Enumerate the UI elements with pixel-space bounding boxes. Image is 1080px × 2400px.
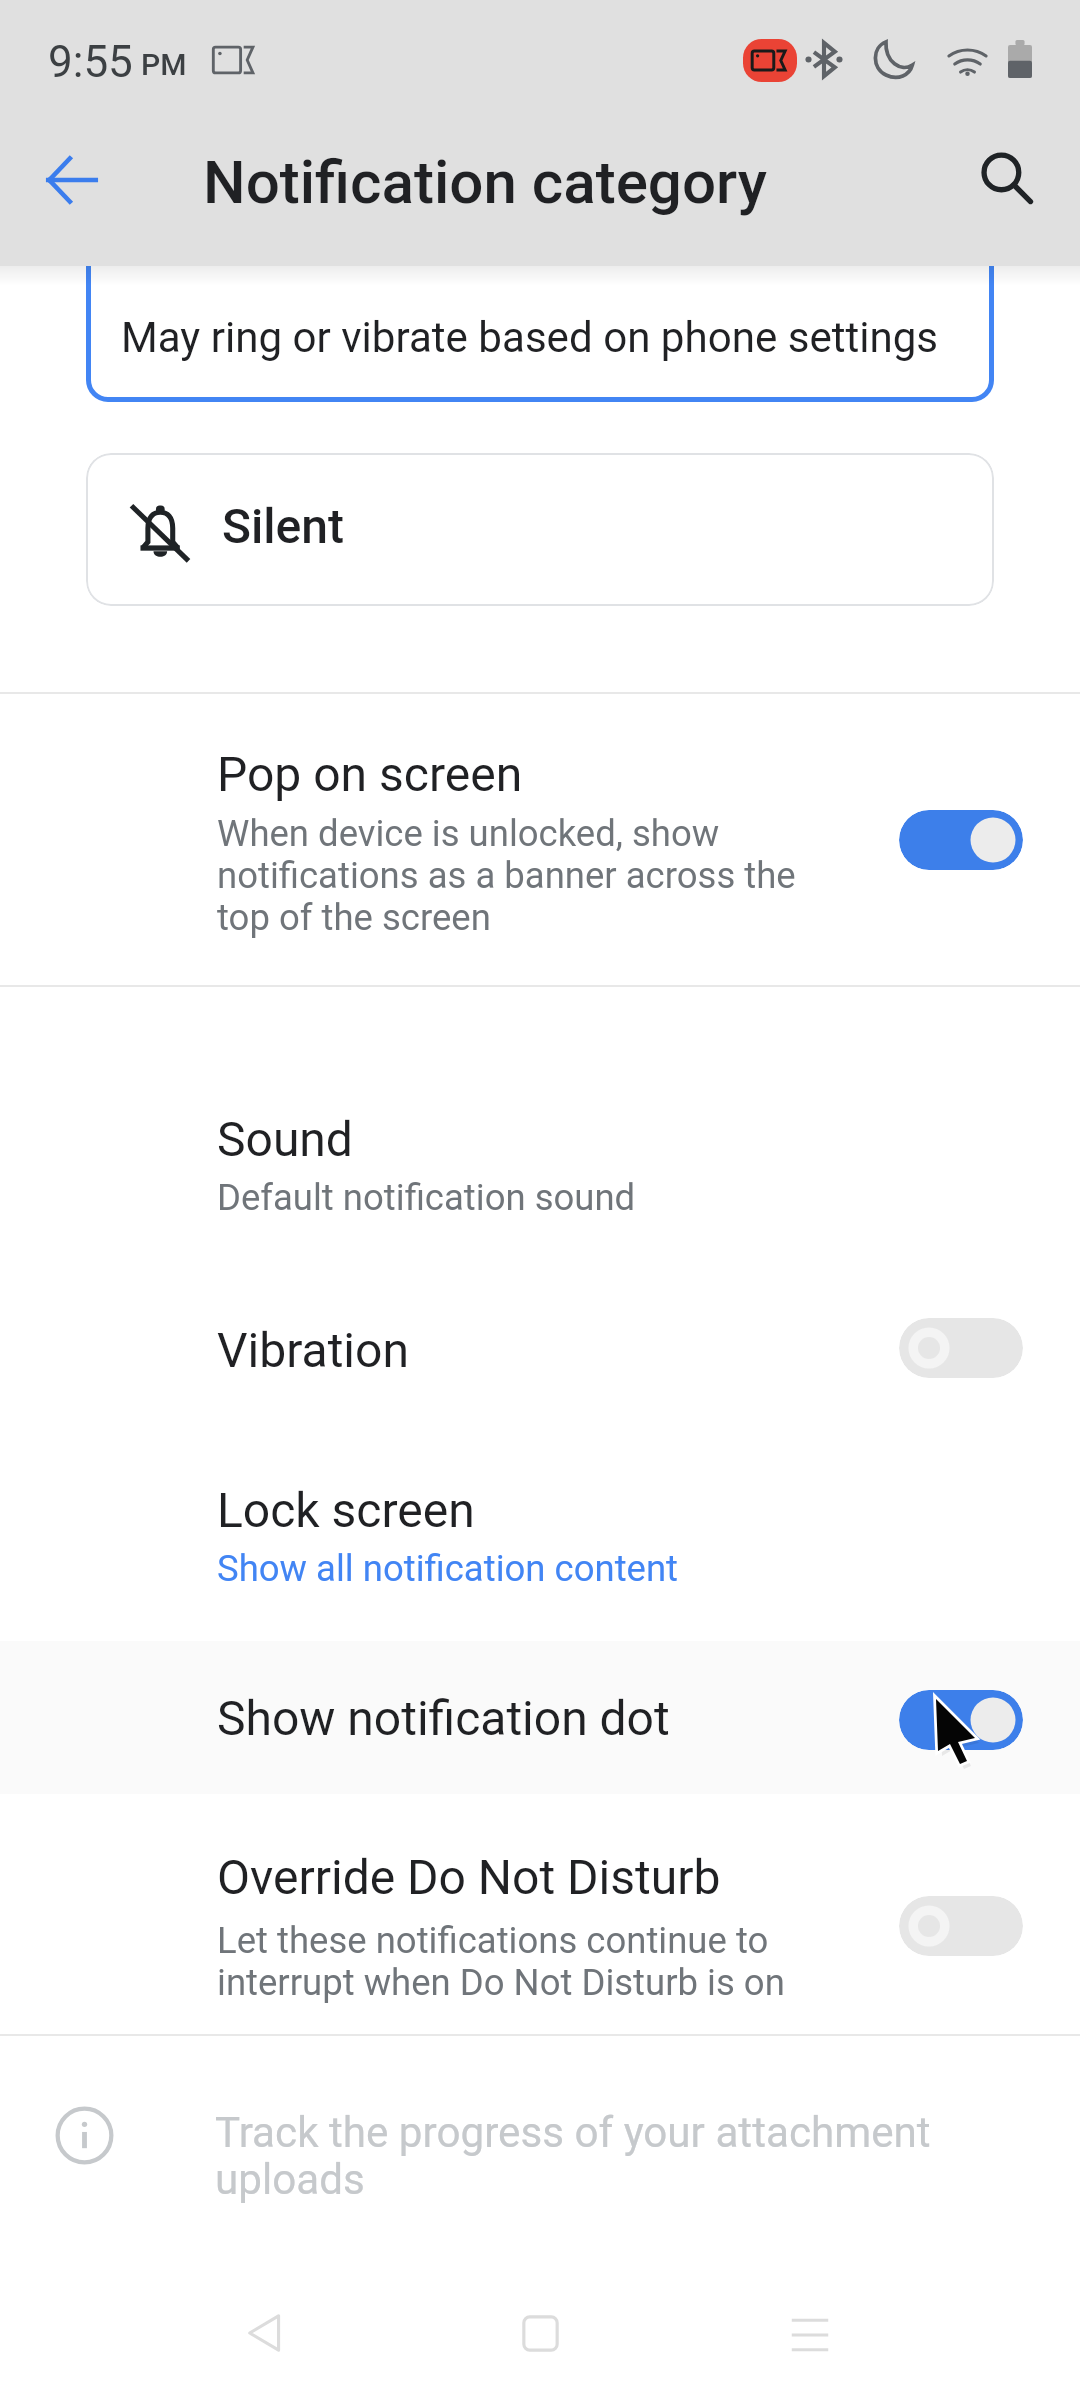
button[interactable]: Back [209,2278,319,2388]
staticText: Notification category [203,147,767,217]
button[interactable] [0,1060,1080,1250]
staticText: PM [141,47,187,82]
staticText: Track the progress of your attachment up… [215,2108,931,2205]
staticText: Silent [222,498,344,554]
button[interactable] [0,693,1080,984]
button[interactable]: Recent apps [755,2280,865,2390]
button[interactable]: Off [899,1896,1023,1956]
staticText: Show all notification content [217,1547,679,1590]
button[interactable]: Home [485,2278,595,2388]
button[interactable]: Silent [86,453,994,606]
staticText: Show notification dot [217,1690,670,1746]
staticText: Default notification sound [217,1176,636,1219]
staticText: When device is unlocked, show notificati… [217,812,796,939]
staticText: Vibration [217,1322,409,1378]
staticText: Lock screen [217,1482,475,1538]
staticText: Pop on screen [217,746,523,802]
staticText: Override Do Not Disturb [217,1849,721,1905]
button[interactable] [0,1410,1080,1580]
button[interactable]: Off [899,1318,1023,1378]
button[interactable] [0,1800,1080,2033]
button[interactable]: Navigate up [24,132,120,228]
button[interactable]: Search [959,130,1055,226]
button[interactable]: On [899,1690,1023,1750]
staticText: Sound [217,1111,353,1167]
staticText: 9:55 [48,36,133,88]
button[interactable] [0,1265,1080,1400]
staticText: Let these notifications continue to inte… [217,1919,785,2004]
button[interactable] [0,1641,1080,1794]
button[interactable]: On [899,810,1023,870]
staticText: May ring or vibrate based on phone setti… [121,313,939,362]
